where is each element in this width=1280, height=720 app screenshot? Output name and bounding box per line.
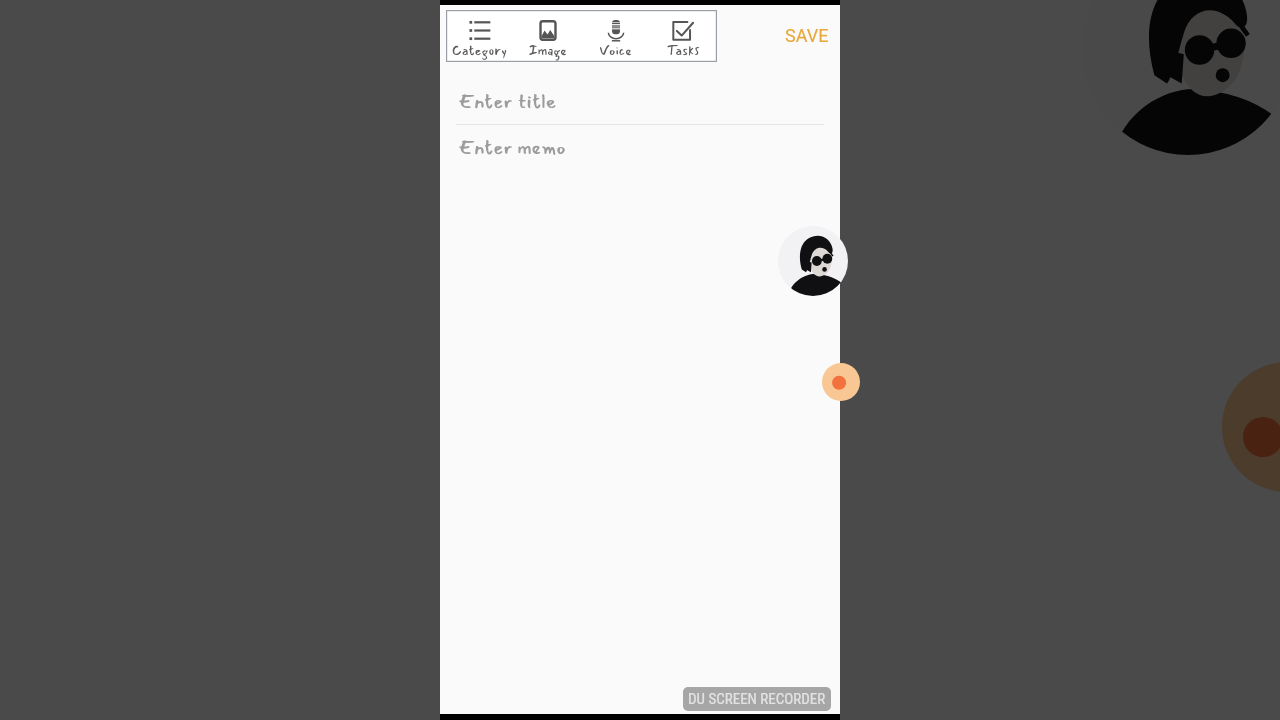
staticText: Enter memo <box>458 132 566 164</box>
staticText: DU SCREEN RECORDER <box>688 690 826 708</box>
staticText: Category <box>452 40 507 61</box>
button[interactable]: Enter memo <box>450 130 830 166</box>
staticText: SAVE <box>785 25 829 46</box>
button[interactable]: Tasks <box>649 10 717 62</box>
staticText: Enter title <box>458 86 557 118</box>
button[interactable]: Recorder overlay <box>778 226 848 296</box>
button[interactable]: Image <box>513 10 581 62</box>
button[interactable]: SAVE <box>778 20 836 50</box>
button[interactable]: Enter title <box>450 84 830 120</box>
button[interactable]: Category <box>446 10 513 62</box>
staticText: Tasks <box>666 40 700 61</box>
button[interactable]: Record <box>822 363 860 401</box>
staticText: Voice <box>599 40 632 61</box>
button[interactable]: Voice <box>581 10 649 62</box>
staticText: Image <box>528 40 567 61</box>
button[interactable]: Category <box>446 10 717 62</box>
